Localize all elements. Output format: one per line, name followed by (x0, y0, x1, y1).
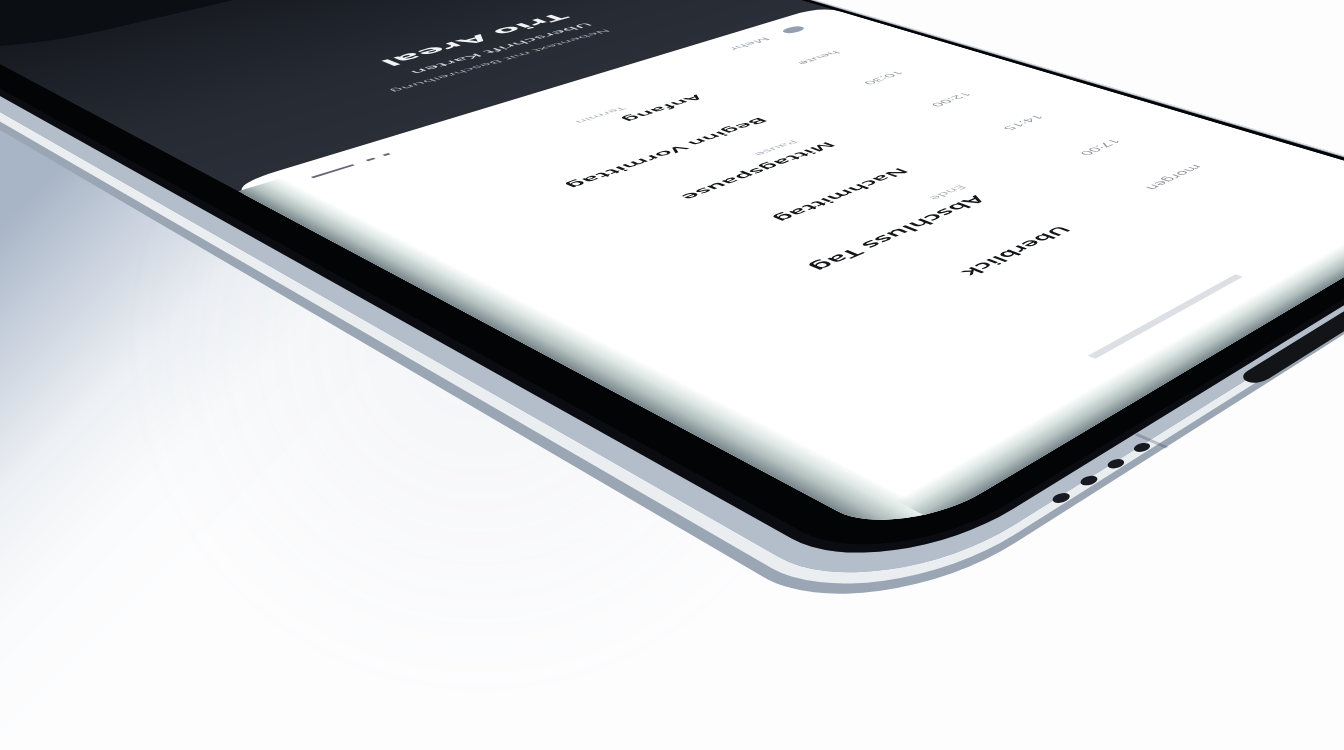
button[interactable]: Schedule list (300, 60, 860, 250)
other: Trio Areal app shown on a phone (0, 0, 1344, 750)
button[interactable]: More (700, 10, 820, 70)
button[interactable]: Trio Areal, open overview (60, 40, 300, 110)
